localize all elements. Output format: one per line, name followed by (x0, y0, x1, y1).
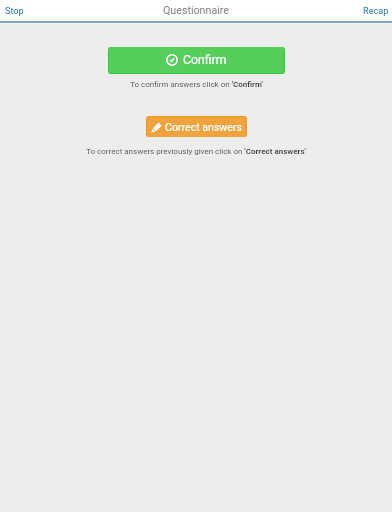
staticText: To correct answers previously given clic… (86, 147, 306, 156)
staticText: Correct answers (165, 121, 242, 133)
button[interactable]: Correct answers (146, 116, 247, 137)
staticText: Confirm (183, 53, 227, 67)
staticText: Questionnaire (163, 4, 230, 17)
staticText: Recap (363, 5, 389, 16)
button[interactable]: Recap (353, 0, 392, 21)
staticText: Stop (5, 5, 24, 16)
staticText: To confirm answers click on 'Confirm' (130, 80, 263, 89)
button[interactable]: Stop (0, 0, 34, 21)
button[interactable]: Confirm (108, 47, 285, 74)
